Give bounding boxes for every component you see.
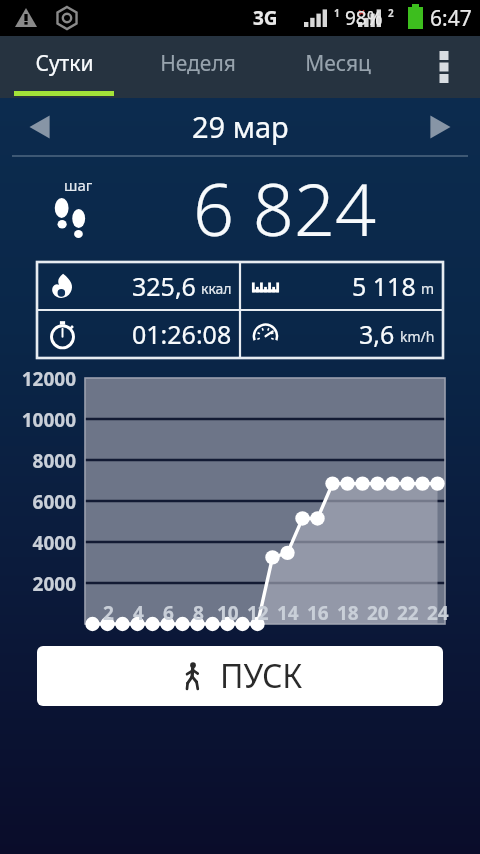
staticText: km/h (400, 327, 435, 346)
staticText: шаг (64, 175, 93, 195)
staticText: Неделя (160, 49, 236, 78)
staticText: 6 (163, 600, 174, 626)
button[interactable]: Месяц (268, 36, 408, 98)
staticText: 4000 (0, 530, 76, 556)
button[interactable]: 3,6 (240, 310, 443, 358)
button[interactable]: ПУСК (37, 646, 443, 706)
staticText: 24 (427, 600, 449, 626)
staticText: ккал (201, 279, 232, 298)
staticText: 98% (345, 5, 383, 31)
button[interactable]: More options (408, 36, 480, 98)
staticText: 22 (397, 600, 419, 626)
staticText: 29 мар (192, 107, 289, 146)
staticText: 6 824 (193, 159, 377, 257)
staticText: Сутки (35, 49, 94, 78)
staticText: 20 (367, 600, 389, 626)
staticText: 10000 (0, 407, 76, 433)
staticText: 2000 (0, 571, 76, 597)
button[interactable]: 01:26:08 (37, 310, 240, 358)
staticText: 12 (247, 600, 269, 626)
button[interactable]: 5 118 (240, 262, 443, 310)
button[interactable]: Previous day (14, 101, 66, 153)
button[interactable]: Next day (414, 101, 466, 153)
staticText: 01:26:08 (132, 317, 232, 351)
staticText: 18 (337, 600, 359, 626)
button[interactable]: 325,6 (37, 262, 240, 310)
button[interactable]: Сутки (0, 36, 128, 98)
staticText: 6:47 (430, 4, 472, 33)
button[interactable]: Неделя (128, 36, 268, 98)
staticText: × (358, 3, 366, 21)
staticText: ПУСК (220, 654, 303, 698)
staticText: 10 (217, 600, 239, 626)
staticText: 4 (133, 600, 144, 626)
staticText: 3G (253, 5, 278, 31)
staticText: 5 118 (352, 269, 416, 303)
staticText: 325,6 (132, 269, 196, 303)
staticText: 8000 (0, 448, 76, 474)
staticText: 12000 (0, 366, 76, 392)
staticText: Месяц (305, 49, 371, 78)
staticText: 8 (193, 600, 204, 626)
staticText: 2 (388, 6, 394, 20)
staticText: 3,6 (359, 317, 395, 351)
staticText: 6000 (0, 489, 76, 515)
staticText: m (421, 279, 435, 298)
staticText: 14 (277, 600, 299, 626)
staticText: 2 (103, 600, 114, 626)
staticText: 16 (307, 600, 329, 626)
staticText: 1 (334, 6, 340, 20)
